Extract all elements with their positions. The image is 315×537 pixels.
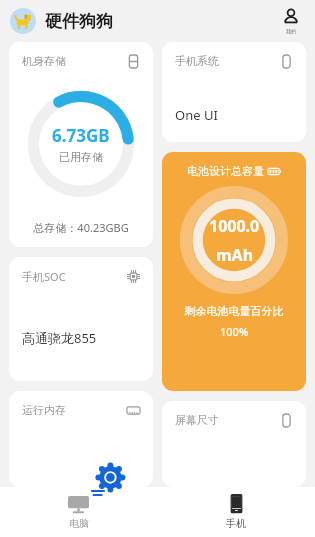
button[interactable]: 运行内存 xyxy=(9,391,153,487)
staticText: 1000.0 xyxy=(209,215,260,237)
button[interactable]: 电脑 xyxy=(0,487,157,537)
other: Memory xyxy=(127,404,140,417)
other: Processor xyxy=(127,270,140,283)
button[interactable]: 手机SOC xyxy=(9,257,153,381)
staticText: 我的 xyxy=(286,28,296,34)
other: Battery xyxy=(268,165,281,178)
other: Storage xyxy=(127,55,140,68)
other: Screen size xyxy=(280,414,293,427)
button[interactable]: 手机 xyxy=(157,487,315,537)
staticText: 运行内存 xyxy=(22,403,66,417)
staticText: 电脑 xyxy=(69,517,89,530)
staticText: 手机 xyxy=(226,517,246,530)
staticText: 屏幕尺寸 xyxy=(175,413,219,427)
staticText: 硬件狗狗 xyxy=(45,11,113,32)
button[interactable] xyxy=(10,8,36,34)
staticText: 100% xyxy=(220,324,249,339)
button[interactable]: 屏幕尺寸 xyxy=(162,401,306,487)
staticText: 6.73GB xyxy=(52,124,110,147)
staticText: 手机SOC xyxy=(22,269,66,284)
other: Loading xyxy=(88,459,128,499)
button[interactable]: Profile xyxy=(279,6,303,36)
button[interactable]: 电池设计总容量 xyxy=(162,152,306,391)
staticText: One UI xyxy=(175,106,218,124)
staticText: 机身存储 xyxy=(22,54,66,68)
other: Profile xyxy=(281,8,301,28)
staticText: 手机系统 xyxy=(175,54,219,68)
staticText: 电池设计总容量 xyxy=(187,164,264,178)
other: System xyxy=(280,55,293,68)
staticText: 已用存储 xyxy=(59,150,103,164)
button[interactable]: 手机系统 xyxy=(162,42,306,142)
staticText: 总存储：40.23GBG xyxy=(22,220,140,235)
button[interactable]: 机身存储 xyxy=(9,42,153,247)
staticText: mAh xyxy=(216,244,254,266)
staticText: 剩余电池电量百分比 xyxy=(178,304,290,318)
staticText: 高通骁龙855 xyxy=(22,329,97,347)
